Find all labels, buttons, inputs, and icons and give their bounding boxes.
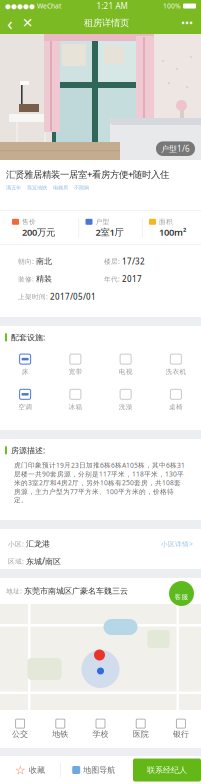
staticText: 100m² [159,226,186,238]
staticText: 17/32 [122,256,145,267]
button[interactable]: Back [0,12,40,34]
staticText: 公交 [12,729,28,739]
button[interactable]: 联系经纪人 [133,758,201,781]
staticText: 电视 [119,368,133,376]
button[interactable]: 床 [0,353,50,376]
staticText: ••• [181,16,193,30]
button[interactable]: 学校 [80,719,121,739]
staticText: 汇贤雅居精装一居室+看房方便+随时入住 [6,168,169,180]
staticText: 冰箱 [68,403,82,411]
staticText: 地图导航 [83,765,115,775]
staticText: 银行 [173,729,189,739]
staticText: 售价 [22,218,36,226]
staticText: 小区详情> [161,539,193,548]
staticText: 满五年 [6,184,21,191]
staticText: 客服 [174,593,188,601]
staticText: 洗衣机 [165,368,186,376]
staticText: 电梯房 [53,184,68,191]
staticText: 床 [22,368,29,376]
staticText: 学校 [92,729,108,739]
staticText: 年代: [104,274,120,283]
button[interactable]: 桌椅 [151,388,201,411]
button[interactable]: 地图导航 [61,756,127,784]
staticText: ✕ [22,15,33,30]
staticText: 精装 [36,274,52,284]
staticText: 不限购 [74,184,89,191]
staticText: 配套设施: [11,332,45,343]
staticText: 户型 [95,218,109,226]
button[interactable]: 地铁 [40,719,80,739]
staticText: 面积 [159,218,173,226]
staticText: 100% [163,2,181,10]
button[interactable]: 洗衣机 [151,353,201,376]
staticText: 收藏 [29,765,45,775]
staticText: 上架时间: [18,292,48,301]
staticText: 医院 [133,729,149,739]
staticText: 装修: [18,274,34,283]
staticText: 2室1厅 [95,226,123,238]
staticText: 地址: [6,587,22,595]
staticText: 东莞市南城区广豪名车魏三云 [24,586,128,596]
staticText: 房源描述: [11,445,45,456]
staticText: 200万元 [22,226,55,238]
staticText: 联系经纪人 [147,765,187,775]
staticText: ☆ [15,763,26,777]
button[interactable]: 电视 [100,353,151,376]
staticText: 2017 [122,274,142,284]
button[interactable]: 洗澡 [100,388,151,411]
staticText: 空调 [18,403,32,411]
staticText: 南北 [36,256,52,266]
button[interactable]: 冰箱 [50,388,100,411]
staticText: 桌椅 [169,403,183,411]
button[interactable]: 空调 [0,388,50,411]
button[interactable]: 宽带 [50,353,100,376]
staticText: 2017/05/01 [50,291,96,302]
button[interactable]: 客服 [169,581,194,606]
staticText: 区域: [8,557,24,566]
button[interactable]: 医院 [121,719,161,739]
button[interactable]: 小区详情> [161,539,193,548]
staticText: 户型1/6 [161,143,190,154]
button[interactable]: 公交 [0,719,40,739]
staticText: ‹ [7,11,13,35]
staticText: 虎门印象预计19月23日加推6栋6栋A105栋，其中6栋31层楼一共90套房源，… [14,461,185,504]
staticText: 楼层: [104,257,120,266]
staticText: 宽带 [68,368,82,376]
staticText: 朝向: [18,257,34,266]
staticText: 小区: [8,539,24,548]
staticText: 洗澡 [119,403,133,411]
staticText: 1:21 AM [96,1,127,11]
button[interactable]: ☆ [0,756,60,784]
button[interactable]: 银行 [161,719,201,739]
staticText: ●●●●● WeChat [5,2,61,10]
staticText: 东城/南区 [26,556,61,566]
button[interactable]: More [173,12,201,34]
staticText: 靠近地铁 [27,184,47,191]
staticText: 租房详情页 [84,17,129,29]
staticText: 地铁 [52,729,68,739]
staticText: 汇龙港 [26,539,50,549]
